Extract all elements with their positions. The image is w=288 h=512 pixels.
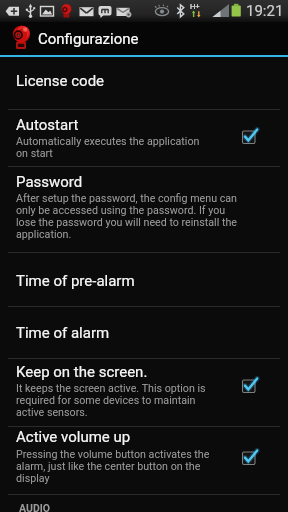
staticText: Configurazione: [38, 30, 139, 48]
staticText: H+: [190, 2, 200, 11]
staticText: Pressing the volume button activates the…: [16, 448, 210, 484]
button[interactable]: Keep on the screen.: [0, 359, 288, 426]
button[interactable]: Time of pre-alarm: [0, 253, 288, 306]
staticText: Time of alarm: [16, 324, 110, 342]
button[interactable]: License code: [0, 57, 288, 109]
staticText: After setup the password, the config men…: [16, 192, 237, 240]
staticText: Keep on the screen.: [16, 363, 148, 381]
staticText: AUDIO: [19, 502, 51, 512]
staticText: Time of pre-alarm: [16, 272, 135, 290]
staticText: It keeps the screen active. This option …: [16, 382, 206, 418]
button[interactable]: Password: [0, 167, 288, 252]
staticText: License code: [16, 72, 105, 90]
staticText: Autostart: [16, 116, 79, 134]
button[interactable]: Active volume up: [0, 427, 288, 494]
button[interactable]: Time of alarm: [0, 307, 288, 358]
button[interactable]: Autostart: [0, 110, 288, 166]
staticText: Password: [16, 173, 83, 191]
staticText: Active volume up: [16, 428, 131, 446]
staticText: 19:21: [246, 2, 284, 20]
staticText: Automatically executes the application o…: [16, 135, 200, 159]
